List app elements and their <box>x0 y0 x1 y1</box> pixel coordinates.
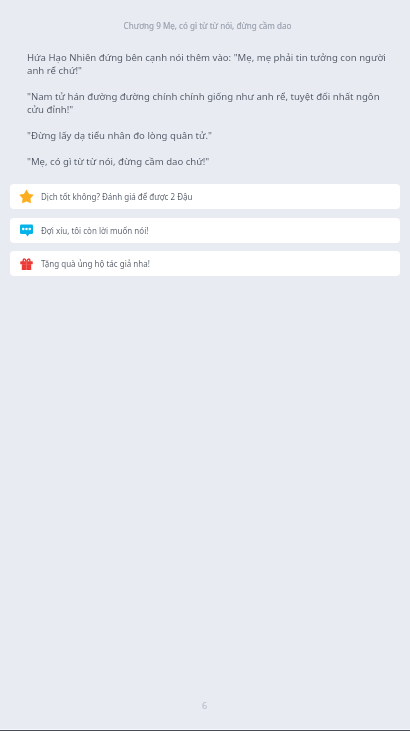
staticText: "Đừng lấy dạ tiểu nhân đo lòng quân tử." <box>27 129 213 142</box>
staticText: 6 <box>202 699 208 711</box>
staticText: Dịch tốt không? Đánh giá để được 2 Đậu <box>41 191 193 202</box>
button[interactable]: Rate translation <box>10 184 400 209</box>
button[interactable]: Write a comment <box>10 218 400 243</box>
button[interactable]: Send a gift <box>10 251 400 276</box>
other: Rate translation <box>20 190 33 203</box>
other: Write a comment <box>20 224 33 237</box>
staticText: Đợi xíu, tôi còn lời muốn nói! <box>41 225 149 236</box>
staticText: Chương 9 Mẹ, có gì từ từ nói, đừng cầm d… <box>5 20 410 31</box>
staticText: "Mẹ, có gì từ từ nói, đừng cầm dao chứ!" <box>27 155 210 168</box>
staticText: Tặng quà ủng hộ tác giả nha! <box>41 258 150 269</box>
other: Send a gift <box>20 257 33 270</box>
staticText: Hứa Hạo Nhiên đứng bên cạnh nói thêm vào… <box>27 51 388 77</box>
staticText: "Nam tử hán đường đường chính chính giốn… <box>27 90 388 116</box>
